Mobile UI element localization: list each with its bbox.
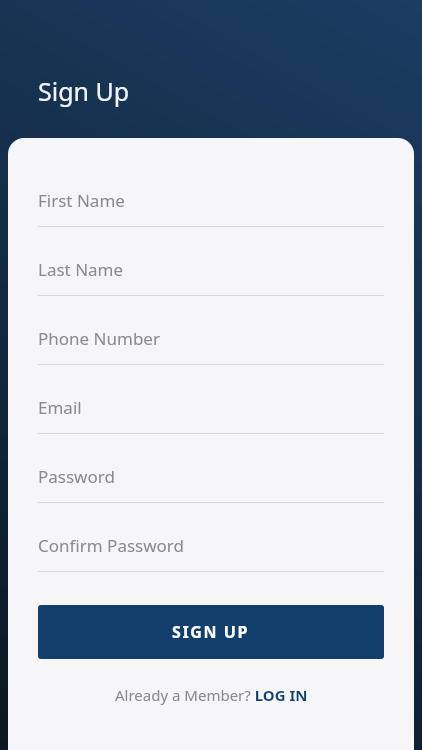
staticText: Sign Up xyxy=(38,74,130,108)
staticText: Phone Number xyxy=(38,327,160,350)
staticText: Email xyxy=(38,396,82,419)
staticText: First Name xyxy=(38,189,125,212)
button[interactable]: Confirm Password xyxy=(38,519,384,572)
button[interactable]: Last Name xyxy=(38,243,384,296)
button[interactable]: SIGN UP xyxy=(38,605,384,659)
staticText: Last Name xyxy=(38,258,124,281)
button[interactable]: Already a Member? LOG IN xyxy=(38,680,384,710)
staticText: Password xyxy=(38,465,115,488)
staticText: Already a Member? LOG IN xyxy=(115,685,308,705)
button[interactable]: Phone Number xyxy=(38,312,384,365)
button[interactable]: Email xyxy=(38,381,384,434)
button[interactable]: First Name xyxy=(38,174,384,227)
staticText: Confirm Password xyxy=(38,534,184,557)
button[interactable]: Password xyxy=(38,450,384,503)
staticText: SIGN UP xyxy=(172,621,250,643)
